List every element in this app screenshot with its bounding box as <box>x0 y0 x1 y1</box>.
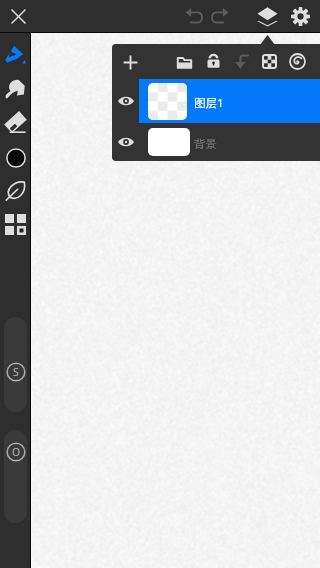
button[interactable]: Folder <box>172 50 196 74</box>
button[interactable]: Lock <box>201 49 225 73</box>
staticText: S <box>13 365 19 379</box>
button[interactable]: Leaf tool <box>0 173 30 207</box>
staticText: 图层1 <box>194 95 224 111</box>
button[interactable]: Brush size <box>4 317 27 412</box>
button[interactable]: Clipping <box>285 49 309 73</box>
button[interactable] <box>139 123 320 161</box>
staticText: 背景 <box>194 137 217 151</box>
button[interactable]: Toggle visibility <box>112 123 139 161</box>
button[interactable]: Settings <box>286 2 314 30</box>
button[interactable] <box>139 79 320 123</box>
button[interactable]: Pen tool <box>0 38 30 72</box>
button[interactable]: Materials <box>0 207 30 241</box>
button[interactable]: Merge down <box>229 49 253 73</box>
button[interactable]: Close <box>4 2 32 30</box>
button[interactable]: Toggle visibility <box>112 79 139 123</box>
button[interactable]: Add layer <box>118 50 142 74</box>
button[interactable]: Undo <box>180 2 208 30</box>
button[interactable]: Redo <box>206 2 234 30</box>
button[interactable]: Colour <box>6 148 26 168</box>
button[interactable]: Opacity <box>4 430 27 523</box>
staticText: O <box>12 445 21 459</box>
button[interactable]: Smudge tool <box>0 72 30 106</box>
button[interactable]: Transparency <box>257 49 281 73</box>
button[interactable]: Layers <box>253 2 281 30</box>
button[interactable]: Eraser tool <box>0 105 30 139</box>
